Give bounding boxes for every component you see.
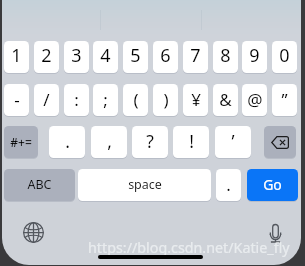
button[interactable]: : xyxy=(64,84,89,116)
staticText: 6 xyxy=(160,43,171,68)
staticText: https://blog.csdn.net/Katie_fly xyxy=(88,238,290,257)
button[interactable]: @ xyxy=(242,84,267,116)
staticText: 0 xyxy=(279,43,290,68)
button[interactable]: ” xyxy=(272,84,297,116)
button[interactable]: 0 xyxy=(272,41,297,73)
staticText: 3 xyxy=(71,43,82,68)
staticText: ) xyxy=(163,88,169,111)
button[interactable]: 7 xyxy=(183,41,208,73)
staticText: 1 xyxy=(11,43,22,68)
staticText: . xyxy=(65,129,70,153)
button[interactable]: space xyxy=(78,169,211,201)
staticText: , xyxy=(107,129,112,153)
staticText: : xyxy=(74,88,79,111)
button[interactable]: , xyxy=(91,126,127,158)
button[interactable]: . xyxy=(49,126,85,158)
button[interactable]: ABC xyxy=(4,169,75,201)
button[interactable]: 2 xyxy=(34,41,59,73)
button[interactable]: 5 xyxy=(123,41,148,73)
staticText: 9 xyxy=(249,43,260,68)
staticText: space xyxy=(128,176,162,193)
button[interactable]: . xyxy=(216,169,241,201)
staticText: 8 xyxy=(220,43,231,68)
staticText: & xyxy=(219,88,232,111)
staticText: ABC xyxy=(27,176,52,193)
button[interactable]: Dictation xyxy=(265,224,286,245)
button[interactable]: & xyxy=(213,84,238,116)
staticText: 5 xyxy=(130,43,141,68)
button[interactable]: 4 xyxy=(93,41,118,73)
staticText: . xyxy=(226,173,231,196)
button[interactable]: Go xyxy=(247,169,298,201)
button[interactable]: ( xyxy=(123,84,148,116)
staticText: 2 xyxy=(41,43,52,68)
button[interactable]: ! xyxy=(173,126,209,158)
button[interactable]: 6 xyxy=(153,41,178,73)
staticText: - xyxy=(14,88,20,111)
staticText: ? xyxy=(146,129,154,153)
staticText: @ xyxy=(247,88,263,111)
staticText: 7 xyxy=(190,43,201,68)
button[interactable]: 9 xyxy=(242,41,267,73)
button[interactable]: ) xyxy=(153,84,178,116)
staticText: / xyxy=(43,88,50,111)
button[interactable]: Delete xyxy=(264,126,296,158)
staticText: Go xyxy=(263,175,282,194)
button[interactable]: 8 xyxy=(213,41,238,73)
staticText: 4 xyxy=(100,43,111,68)
button[interactable]: #+= xyxy=(4,126,38,158)
button[interactable]: ? xyxy=(132,126,168,158)
button[interactable]: 1 xyxy=(4,41,29,73)
staticText: #+= xyxy=(10,134,32,150)
button[interactable]: - xyxy=(4,84,29,116)
staticText: ( xyxy=(133,88,139,111)
staticText: ¥ xyxy=(191,88,201,111)
button[interactable]: 3 xyxy=(64,41,89,73)
button[interactable]: ; xyxy=(93,84,118,116)
staticText: ” xyxy=(281,88,288,111)
button[interactable]: ’ xyxy=(215,126,251,158)
staticText: ’ xyxy=(231,129,235,153)
staticText: ! xyxy=(189,129,194,153)
button[interactable]: ¥ xyxy=(183,84,208,116)
staticText: ; xyxy=(103,88,108,111)
button[interactable]: / xyxy=(34,84,59,116)
button[interactable]: Change keyboard xyxy=(23,222,44,243)
